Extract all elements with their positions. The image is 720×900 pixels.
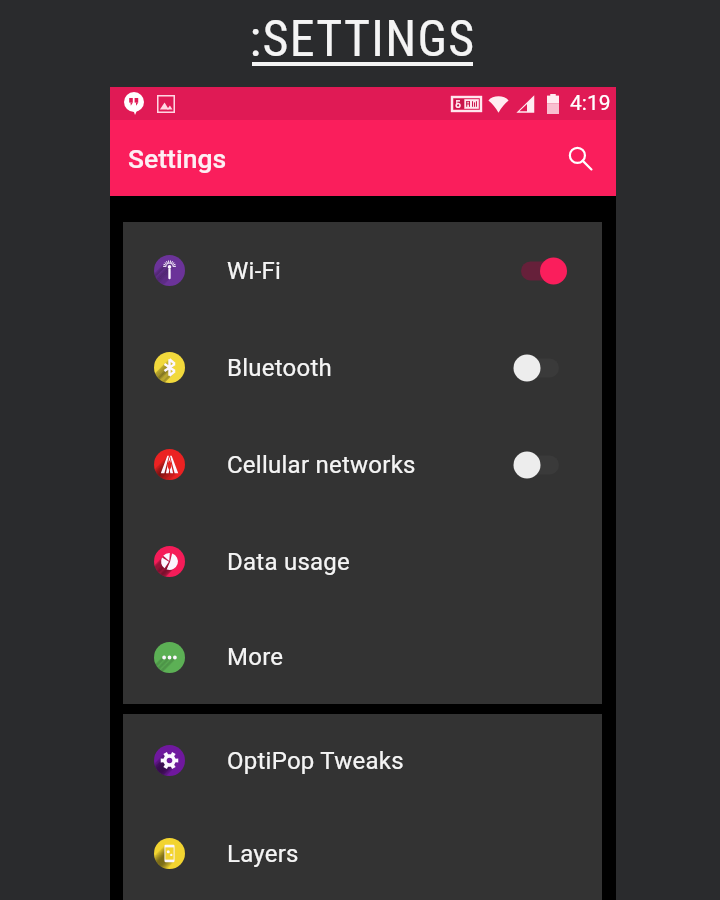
staticText: Wi-Fi [227,257,282,285]
staticText: :SETTINGS [249,10,476,69]
button[interactable]: Layers [123,809,602,898]
staticText: OptiPop Tweaks [227,747,404,775]
button[interactable]: Wi-Fi [123,222,602,319]
staticText: More [227,643,284,671]
staticText: Cellular networks [227,451,416,479]
button[interactable]: Search [556,134,604,182]
staticText: Bluetooth [227,354,333,382]
staticText: Data usage [227,548,351,576]
button[interactable]: OptiPop Tweaks [123,712,602,809]
staticText: Settings [128,143,227,174]
button[interactable]: Toggle Cellular networks [513,449,567,481]
staticText: 4:19 [570,91,611,116]
button[interactable]: Toggle Bluetooth [513,352,567,384]
button[interactable]: Toggle Wi-Fi [513,255,567,287]
button[interactable]: Cellular networks [123,416,602,513]
staticText: Layers [227,840,299,868]
button[interactable]: Bluetooth [123,319,602,416]
button[interactable]: More [123,610,602,704]
button[interactable]: Data usage [123,513,602,610]
